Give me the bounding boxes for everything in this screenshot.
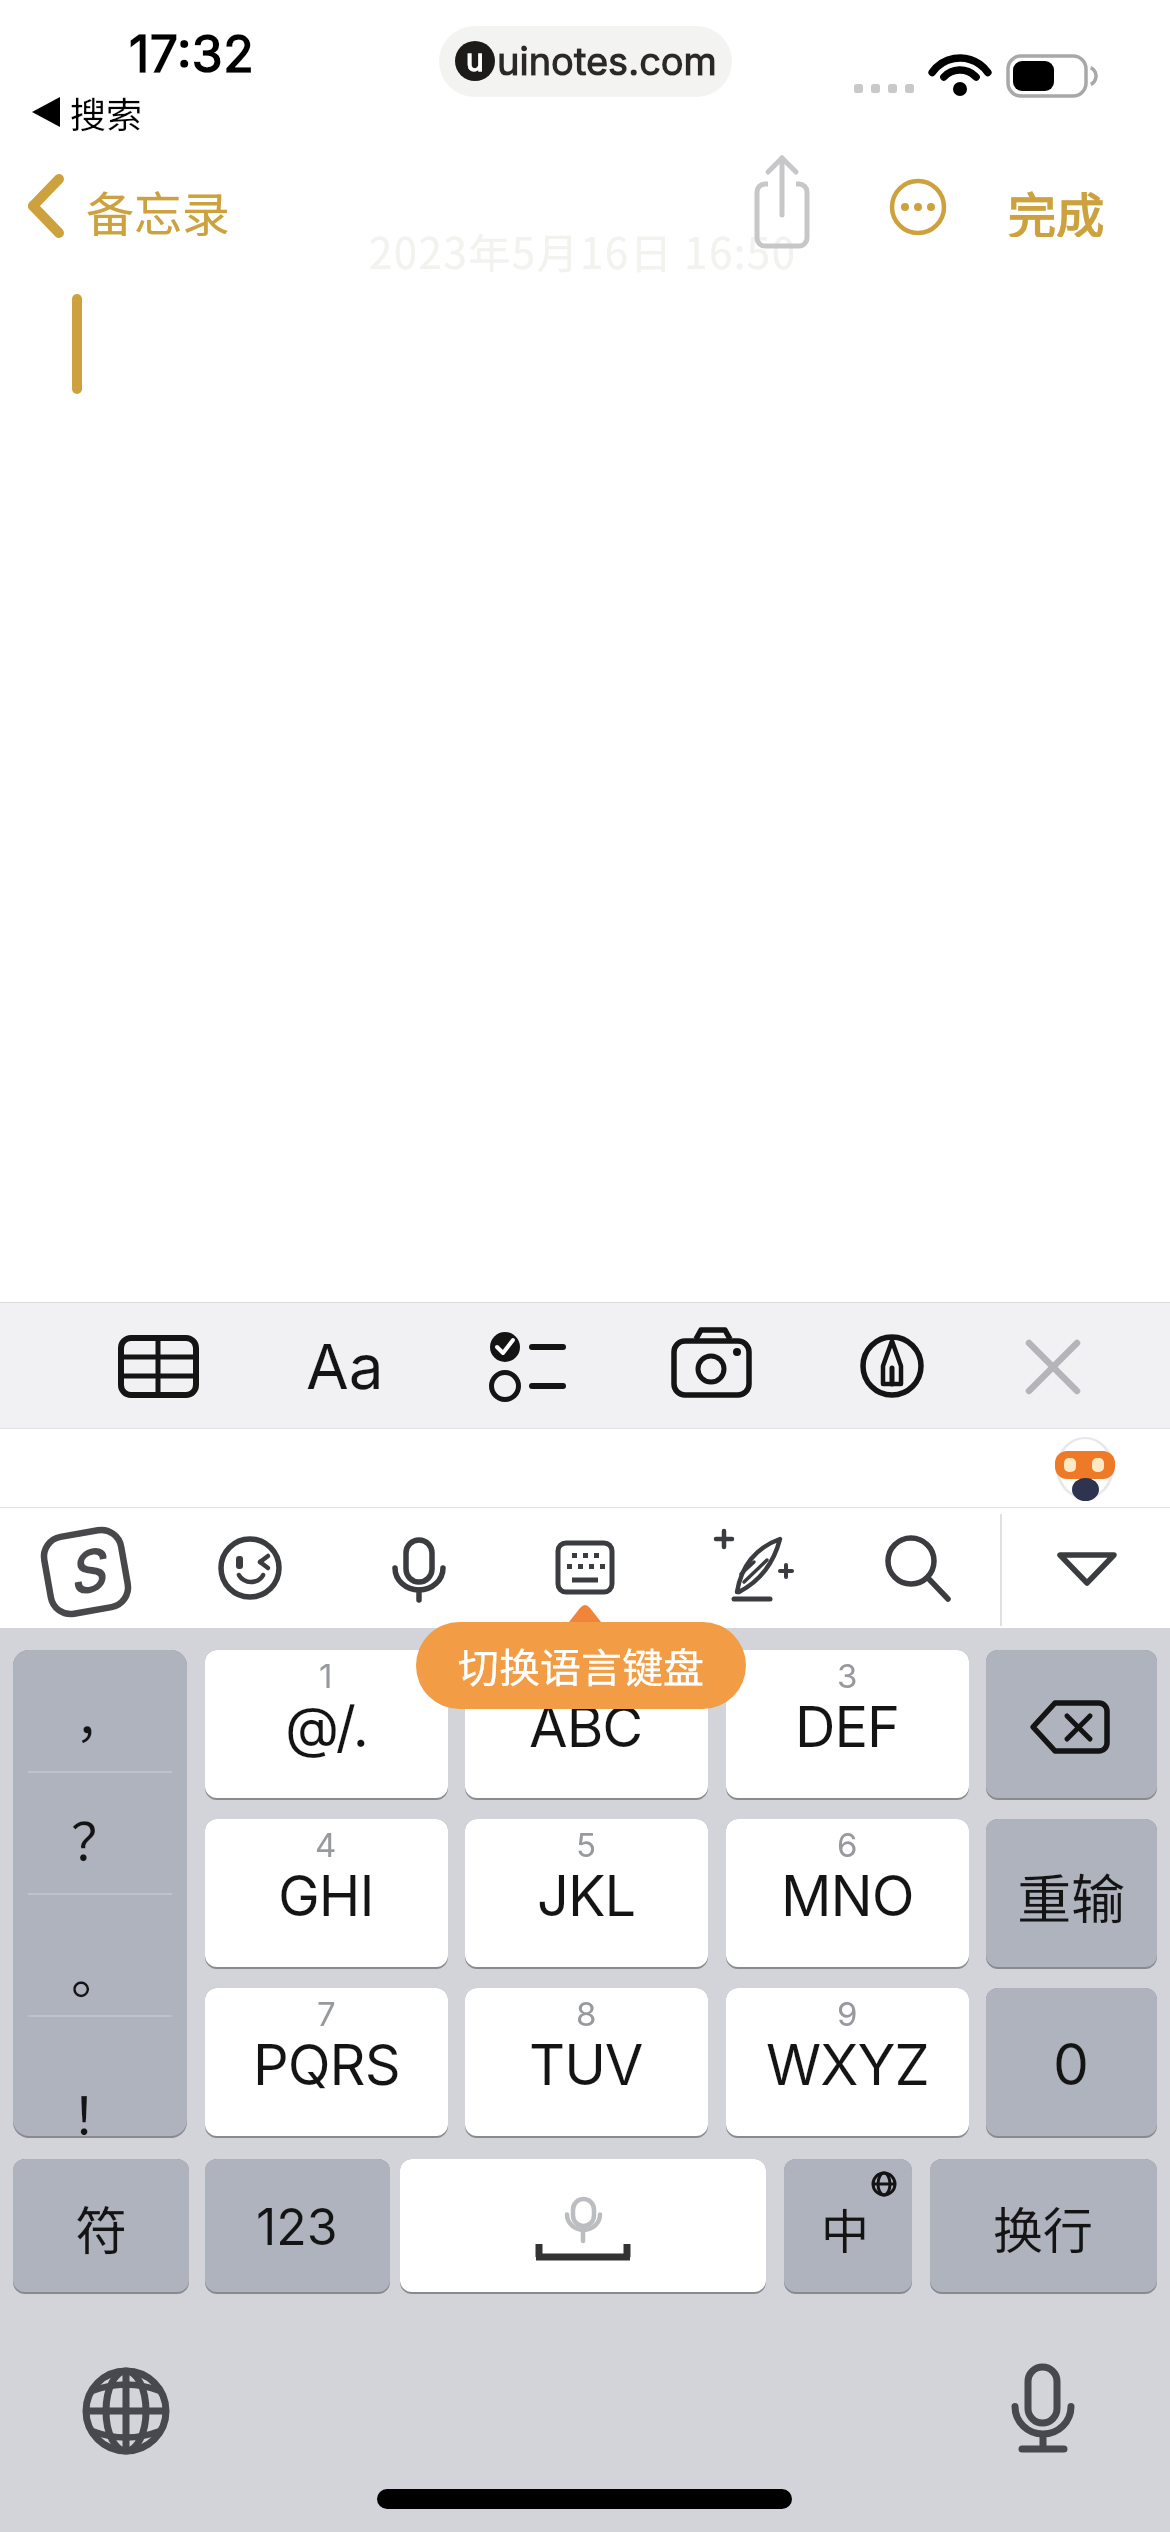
button[interactable] (205, 1988, 448, 2138)
staticText: 5 (576, 1825, 597, 1865)
button[interactable] (465, 1650, 708, 1800)
button[interactable] (205, 2159, 390, 2294)
button[interactable] (553, 1538, 617, 1598)
staticText: 切换语言键盘 (458, 1635, 704, 1694)
staticText: PQRS (253, 2031, 400, 2099)
button[interactable] (490, 1330, 566, 1400)
staticText: ABC (529, 1693, 643, 1761)
staticText: 中 (821, 2193, 870, 2263)
staticText: S (62, 1535, 110, 1609)
button[interactable] (86, 2371, 166, 2451)
button[interactable]: 备忘录 (86, 176, 231, 236)
button[interactable] (439, 26, 732, 97)
staticText: 4 (315, 1825, 337, 1865)
staticText: 。 (71, 1934, 124, 2009)
button[interactable]: 完成 (1008, 177, 1105, 237)
button[interactable] (13, 1650, 187, 2138)
staticText: 3 (837, 1656, 858, 1696)
button[interactable] (305, 1330, 385, 1400)
button[interactable] (400, 2159, 766, 2294)
staticText: ， (75, 1680, 125, 1752)
staticText: @/. (285, 1693, 368, 1761)
button[interactable] (883, 1532, 953, 1602)
button[interactable] (784, 2159, 912, 2294)
button[interactable] (465, 1819, 708, 1969)
staticText: 完成 (1008, 177, 1105, 237)
staticText: 搜索 (70, 86, 143, 138)
button[interactable] (718, 1528, 792, 1602)
staticText: ？ (71, 1801, 124, 1876)
button[interactable] (986, 1650, 1157, 1800)
button[interactable] (13, 2159, 189, 2294)
button[interactable] (726, 1819, 969, 1969)
staticText: 备忘录 (86, 176, 231, 236)
staticText: 6 (837, 1825, 858, 1865)
button[interactable] (1025, 1339, 1081, 1395)
staticText: 123 (256, 2197, 338, 2257)
staticText: JKL (537, 1862, 636, 1930)
staticText: 重输 (1017, 1856, 1125, 1934)
button[interactable] (986, 1819, 1157, 1969)
staticText: 9 (837, 1994, 858, 2034)
button[interactable] (386, 1532, 450, 1604)
button[interactable] (1055, 1548, 1119, 1592)
staticText: TUV (529, 2031, 643, 2099)
button[interactable] (218, 1536, 282, 1600)
staticText: ！ (71, 2075, 124, 2150)
button[interactable] (416, 1622, 746, 1709)
button[interactable]: S (41, 1527, 131, 1617)
staticText: 2 (576, 1656, 597, 1696)
button[interactable] (860, 1334, 924, 1398)
staticText: u (466, 42, 484, 78)
staticText: Aa (306, 1329, 384, 1404)
button[interactable] (726, 1988, 969, 2138)
button[interactable] (1050, 1438, 1112, 1500)
staticText: DEF (795, 1693, 900, 1761)
button[interactable] (1005, 2360, 1081, 2452)
button[interactable] (465, 1988, 708, 2138)
staticText: uinotes.com (497, 38, 717, 84)
button[interactable] (986, 1988, 1157, 2138)
staticText: 1 (319, 1656, 333, 1696)
button[interactable] (672, 1325, 752, 1400)
staticText: 2023年5月16日 16:50 (369, 220, 797, 281)
button[interactable] (205, 1650, 448, 1800)
staticText: 8 (576, 1994, 597, 2034)
staticText: 7 (317, 1994, 336, 2034)
button[interactable] (726, 1650, 969, 1800)
staticText: 17:32 (129, 24, 255, 84)
staticText: 符 (75, 2190, 128, 2265)
button[interactable] (930, 2159, 1157, 2294)
staticText: GHI (278, 1862, 374, 1930)
staticText: 换行 (993, 2191, 1093, 2263)
button[interactable] (120, 1330, 196, 1400)
staticText: WXYZ (766, 2031, 929, 2099)
button[interactable] (205, 1819, 448, 1969)
staticText: MNO (781, 1862, 914, 1930)
staticText: 0 (1053, 2030, 1089, 2099)
